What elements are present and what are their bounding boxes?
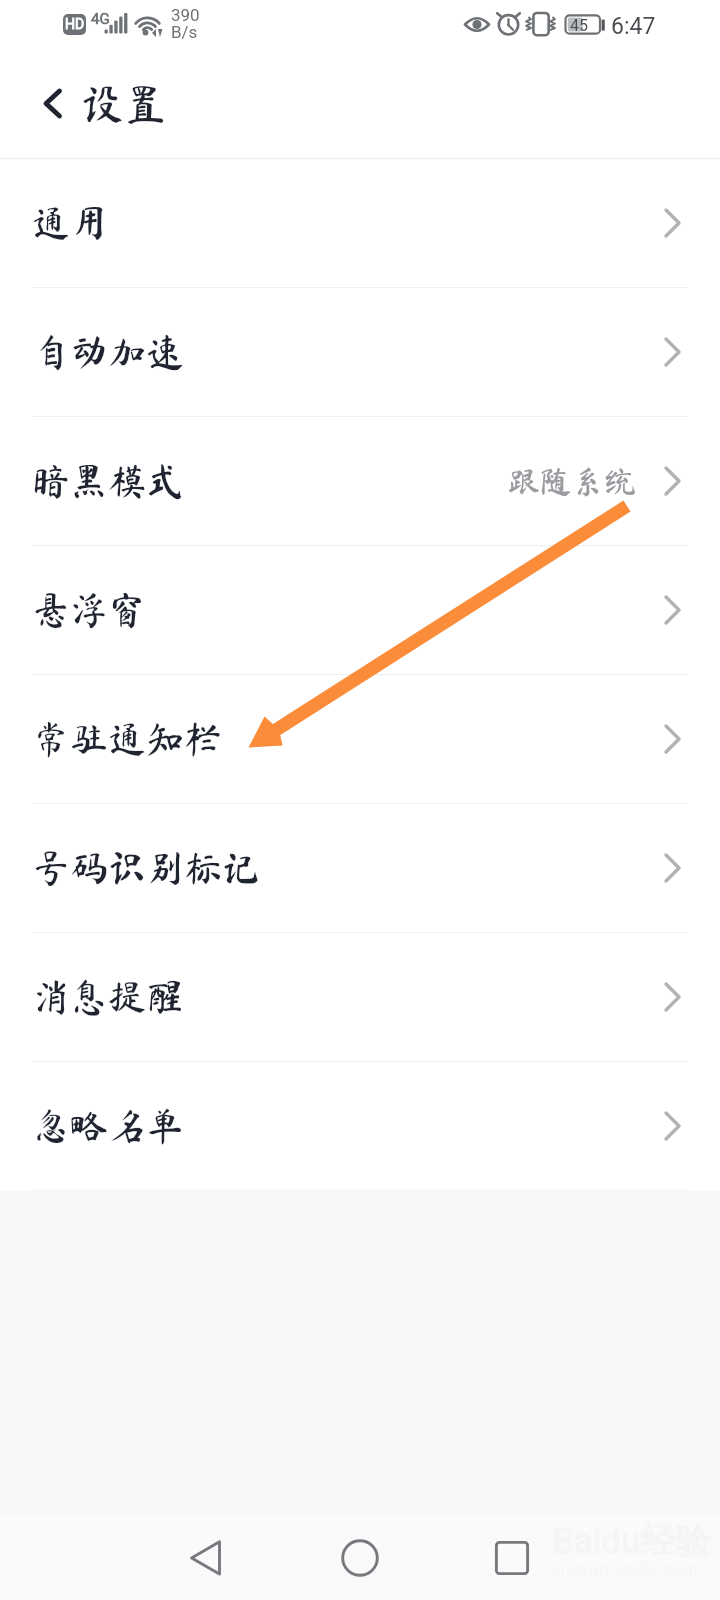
staticText: 4G [91,10,110,28]
staticText: 忽略名单 [32,1107,185,1145]
button[interactable]: 号码识别标记 [0,804,720,932]
button[interactable]: 悬浮窗 [0,546,720,674]
button[interactable]: 最近任务 [467,1515,557,1600]
button[interactable]: 暗黑模式 [0,417,720,545]
staticText: B/s [171,22,198,42]
button[interactable]: 自动加速 [0,288,720,416]
button[interactable]: 常驻通知栏 [0,675,720,803]
button[interactable]: 消息提醒 [0,933,720,1061]
staticText: 6:47 [611,13,656,40]
button[interactable]: 返回 [0,72,74,146]
staticText: 暗黑模式 [32,462,185,500]
staticText: HD [65,16,85,32]
button[interactable]: 通用 [0,159,720,287]
staticText: 悬浮窗 [32,591,147,629]
button[interactable]: 忽略名单 [0,1062,720,1190]
button[interactable]: 返回 [161,1515,251,1600]
staticText: 390 [171,5,200,25]
button[interactable]: 主页 [315,1515,405,1600]
staticText: 跟随系统 [508,465,637,497]
staticText: 号码识别标记 [32,849,261,887]
staticText: 通用 [32,204,109,242]
staticText: 消息提醒 [32,978,185,1016]
staticText: 设置 [81,82,167,125]
staticText: 45 [570,16,588,35]
staticText: 常驻通知栏 [32,720,223,758]
staticText: 自动加速 [32,333,185,371]
